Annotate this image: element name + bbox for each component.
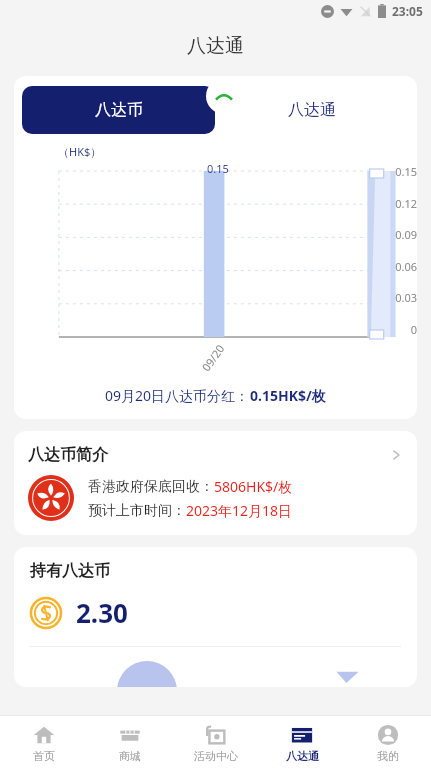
- button[interactable]: 商城: [87, 716, 173, 770]
- staticText: 预计上市时间：: [88, 502, 186, 520]
- staticText: 0: [410, 322, 417, 337]
- staticText: 八达币: [95, 100, 143, 120]
- button[interactable]: 八达通: [259, 716, 345, 770]
- staticText: 商城: [119, 749, 141, 763]
- button[interactable]: 八达币: [22, 86, 215, 134]
- staticText: 0.03: [395, 290, 417, 305]
- staticText: 0.15HK$/枚: [250, 386, 326, 405]
- staticText: 23:05: [392, 3, 423, 19]
- staticText: 我的: [377, 749, 399, 763]
- staticText: 八达通: [286, 749, 319, 763]
- staticText: 0.09: [395, 227, 417, 242]
- staticText: 八达通: [187, 34, 244, 58]
- staticText: 5806HK$/枚: [214, 477, 293, 496]
- other: Status badge: [206, 78, 242, 114]
- staticText: 八达币简介: [28, 445, 108, 465]
- button[interactable]: 八达通: [215, 86, 409, 134]
- staticText: 0.06: [395, 259, 417, 274]
- button[interactable]: 活动中心: [173, 716, 259, 770]
- staticText: 首页: [33, 749, 55, 763]
- staticText: 09月20日八达币分红：: [105, 386, 250, 405]
- button[interactable]: 我的: [345, 716, 431, 770]
- staticText: 八达通: [288, 100, 336, 120]
- staticText: 0.15: [207, 161, 229, 176]
- staticText: 香港政府保底回收：: [88, 478, 214, 496]
- staticText: 2.30: [76, 595, 128, 630]
- button[interactable]: 首页: [0, 716, 87, 770]
- button[interactable]: 八达币简介: [14, 431, 417, 535]
- staticText: 2023年12月18日: [186, 501, 293, 520]
- staticText: 09/20: [198, 341, 228, 374]
- staticText: 持有八达币: [30, 561, 110, 581]
- staticText: （HK$）: [58, 144, 102, 159]
- staticText: 0.15: [395, 164, 417, 179]
- staticText: 0.12: [395, 196, 417, 211]
- staticText: 活动中心: [194, 749, 238, 763]
